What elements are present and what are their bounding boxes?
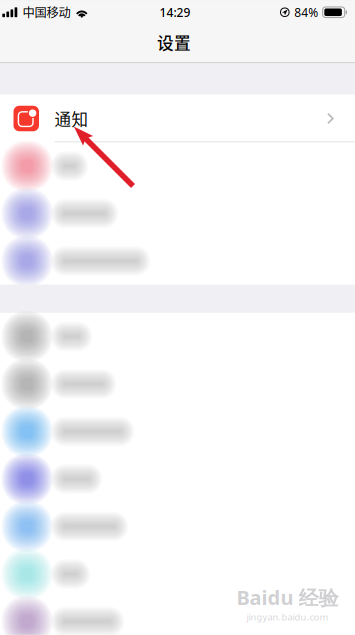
button[interactable] (0, 190, 355, 237)
button[interactable] (0, 503, 355, 550)
staticText: Baidu 经验 (236, 584, 338, 611)
button[interactable]: 通知 (0, 95, 355, 142)
staticText: 84% (294, 4, 318, 20)
staticText: 设置 (157, 30, 191, 54)
button[interactable] (0, 550, 355, 598)
button[interactable] (0, 408, 355, 455)
button[interactable] (0, 237, 355, 285)
button[interactable] (0, 598, 355, 635)
button[interactable] (0, 360, 355, 408)
staticText: 中国移动 (23, 3, 71, 21)
button[interactable] (0, 142, 355, 190)
staticText: jingyan.baidu.com (246, 611, 328, 623)
button[interactable] (0, 313, 355, 360)
button[interactable] (0, 455, 355, 503)
staticText: 通知 (54, 106, 88, 130)
staticText: 14:29 (159, 4, 190, 20)
